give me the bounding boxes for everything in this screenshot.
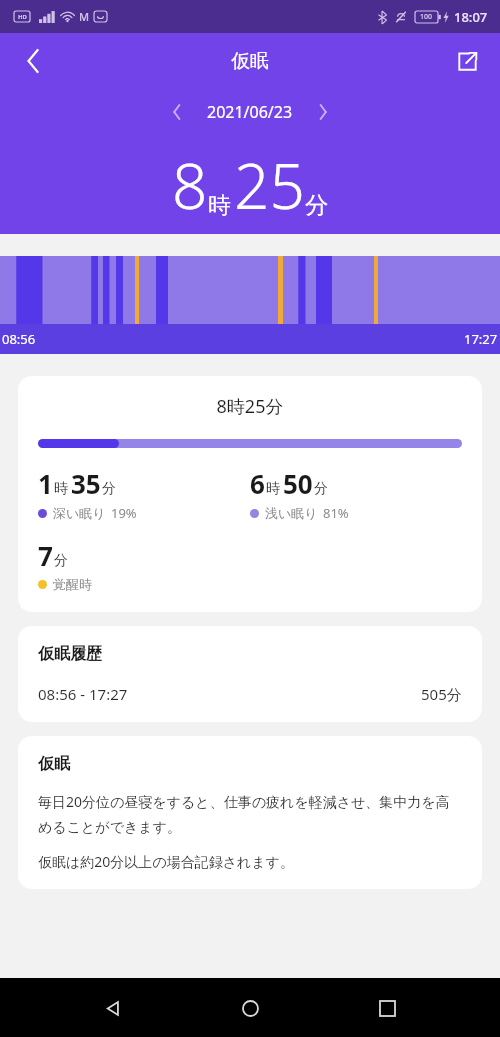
staticText: 08:56 xyxy=(2,330,36,348)
staticText: 時 xyxy=(54,480,68,498)
staticText: 仮眠 xyxy=(38,754,70,774)
staticText: 1 xyxy=(38,466,53,501)
button[interactable]: 8時25分 xyxy=(18,376,482,612)
staticText: 50 xyxy=(283,466,313,501)
staticText: 17:27 xyxy=(464,330,498,348)
staticText: 18:07 xyxy=(454,8,488,26)
staticText: 19% xyxy=(111,504,137,522)
staticText: 08:56 - 17:27 xyxy=(38,684,128,704)
staticText: 35 xyxy=(71,466,101,501)
staticText: 7 xyxy=(38,538,53,573)
staticText: 浅い眠り xyxy=(265,505,318,521)
staticText: 分 xyxy=(305,191,328,220)
staticText: 6 xyxy=(250,466,265,501)
staticText: 深い眠り xyxy=(53,505,106,521)
staticText: 8時25分 xyxy=(18,394,482,419)
staticText: 覚醒時 xyxy=(53,576,92,592)
button[interactable]: Previous day xyxy=(158,93,196,131)
staticText: 毎日20分位の昼寝をすると、仕事の疲れを軽減させ、集中力を高めることができます。 xyxy=(38,792,462,836)
staticText: 分 xyxy=(102,480,116,498)
staticText: 100 xyxy=(420,12,433,22)
staticText: 時 xyxy=(266,480,280,498)
staticText: 仮眠 xyxy=(231,49,269,73)
staticText: 2021/06/23 xyxy=(207,101,293,123)
staticText: 分 xyxy=(314,480,328,498)
staticText: 8 xyxy=(172,143,208,227)
staticText: 分 xyxy=(54,552,68,570)
staticText: 25 xyxy=(234,143,305,227)
staticText: 仮眠履歴 xyxy=(38,644,102,664)
staticText: M xyxy=(79,9,90,24)
button[interactable]: Back xyxy=(9,37,57,85)
staticText: 時 xyxy=(208,191,231,220)
button[interactable]: Back xyxy=(89,984,137,1032)
button[interactable]: Next day xyxy=(304,93,342,131)
staticText: 505分 xyxy=(421,684,462,704)
button[interactable]: 仮眠履歴 xyxy=(18,626,482,722)
staticText: 仮眠は約20分以上の場合記録されます。 xyxy=(38,852,294,871)
button[interactable]: Home xyxy=(226,984,274,1032)
staticText: HD xyxy=(18,13,27,21)
button[interactable]: Share xyxy=(443,37,491,85)
button[interactable]: Recent apps xyxy=(363,984,411,1032)
staticText: 81% xyxy=(323,504,349,522)
